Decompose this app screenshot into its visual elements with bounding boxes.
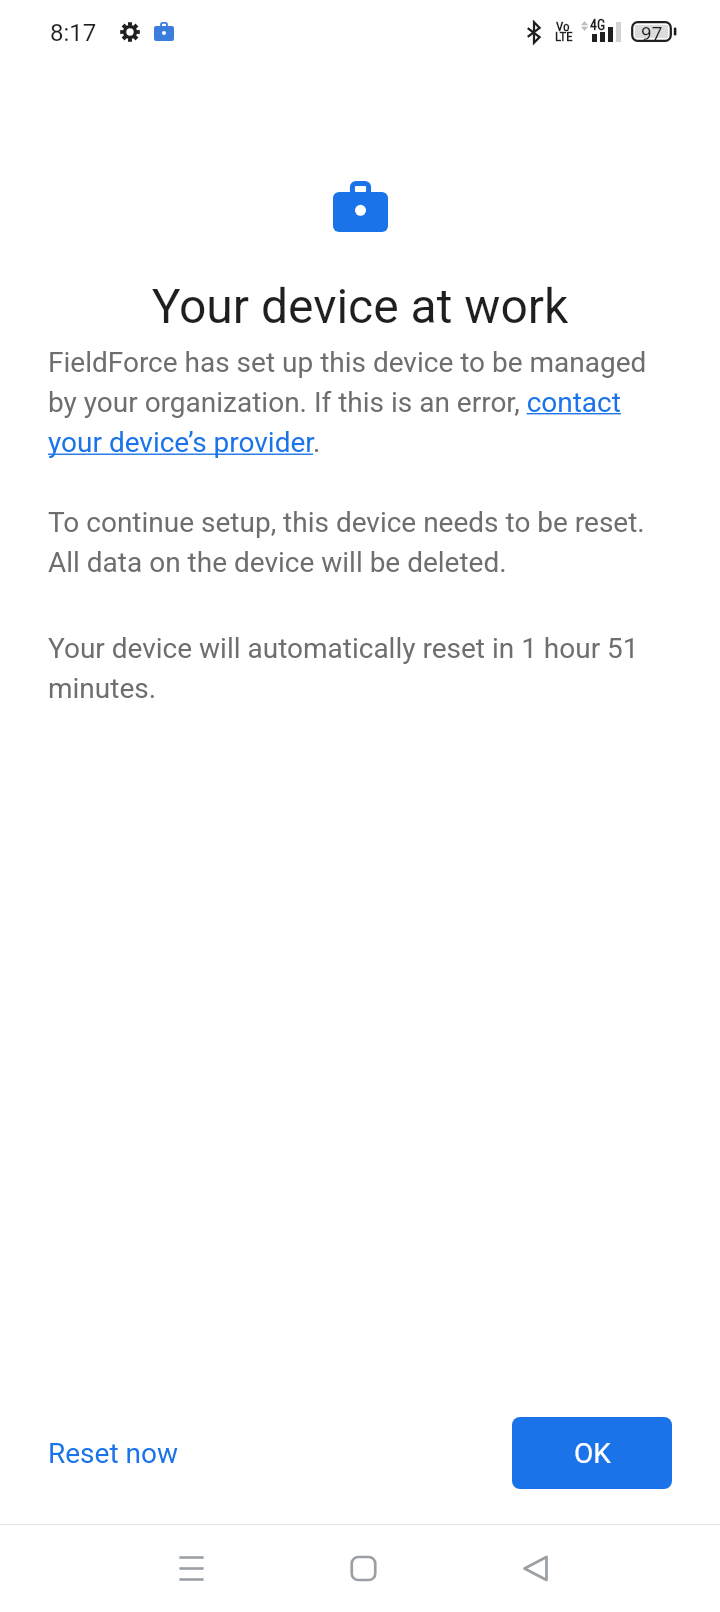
staticText: Vo bbox=[556, 19, 570, 34]
staticText: LTE bbox=[555, 29, 573, 44]
staticText: To continue setup, this device needs to … bbox=[48, 506, 676, 579]
staticText: 8:17 bbox=[50, 19, 97, 47]
staticText: 97 bbox=[641, 22, 663, 43]
staticText: OK bbox=[574, 1437, 611, 1470]
button[interactable]: Home bbox=[303, 1525, 423, 1612]
button[interactable]: OK bbox=[512, 1417, 672, 1489]
staticText: 4G bbox=[590, 17, 606, 33]
staticText: Reset now bbox=[48, 1437, 178, 1470]
staticText: Your device at work bbox=[0, 278, 720, 334]
button[interactable]: Back bbox=[475, 1525, 595, 1612]
staticText: FieldForce has set up this device to be … bbox=[48, 346, 676, 459]
staticText: Your device will automatically reset in … bbox=[48, 632, 676, 705]
button[interactable]: Reset now bbox=[40, 1427, 186, 1480]
button[interactable]: Recents bbox=[131, 1525, 251, 1612]
